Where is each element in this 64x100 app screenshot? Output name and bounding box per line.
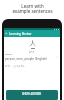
staticText: ひと、にんげん: [5, 64, 25, 68]
staticText: 人: [30, 39, 36, 47]
staticText: Learning Review: [9, 32, 32, 36]
button[interactable]: Back: [4, 31, 9, 36]
staticText: person, men, people (English): [5, 57, 47, 61]
button[interactable]: More options: [55, 55, 58, 58]
button[interactable]: SHOW ANSWER: [6, 90, 58, 100]
staticText: ひと: [29, 50, 36, 54]
staticText: SHOW ANSWER: [22, 92, 42, 96]
staticText: Learn with example sentences: [12, 3, 53, 14]
